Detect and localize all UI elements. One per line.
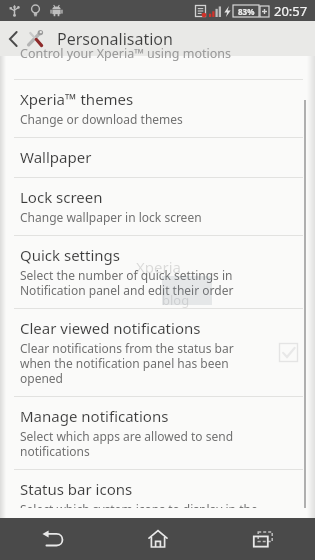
staticText: Personalisation bbox=[57, 28, 173, 50]
staticText: Clear notifications from the status bar … bbox=[20, 340, 234, 386]
staticText: Status bar icons bbox=[20, 479, 133, 499]
staticText: 83% bbox=[238, 6, 255, 17]
button[interactable]: Manage notifications bbox=[0, 397, 315, 469]
staticText: Quick settings bbox=[20, 245, 120, 265]
staticText: 20:57 bbox=[274, 2, 308, 20]
button[interactable]: Home bbox=[105, 518, 210, 560]
staticText: Select which system icons to display in … bbox=[20, 501, 258, 508]
staticText: Xperia™ themes bbox=[20, 89, 134, 109]
staticText: Clear viewed notifications bbox=[20, 318, 201, 338]
staticText: Change or download themes bbox=[20, 111, 183, 127]
button[interactable]: Xperia™ themes bbox=[0, 80, 315, 137]
button[interactable]: Quick settings bbox=[0, 236, 315, 308]
staticText: Control your Xperia™ using motions bbox=[20, 45, 231, 62]
button[interactable]: Status bar icons bbox=[0, 470, 315, 518]
button[interactable]: Back bbox=[0, 21, 54, 56]
button[interactable]: Lock screen bbox=[0, 178, 315, 235]
staticText: Select the number of quick settings in N… bbox=[20, 267, 234, 298]
button[interactable]: Back bbox=[0, 518, 105, 560]
staticText: Manage notifications bbox=[20, 406, 169, 426]
staticText: Lock screen bbox=[20, 187, 103, 207]
button[interactable]: Wallpaper bbox=[0, 138, 315, 177]
button[interactable]: Clear viewed notifications toggle bbox=[271, 335, 305, 369]
button[interactable]: Clear viewed notifications bbox=[0, 309, 315, 396]
staticText: blog bbox=[162, 291, 190, 309]
staticText: Select which apps are allowed to send no… bbox=[20, 428, 234, 459]
staticText: Xperia bbox=[136, 257, 181, 277]
button[interactable]: Control your Xperia™ using motions bbox=[0, 56, 315, 79]
button[interactable]: Recent apps bbox=[210, 518, 315, 560]
staticText: Wallpaper bbox=[20, 147, 92, 167]
staticText: Change wallpaper in lock screen bbox=[20, 209, 202, 225]
